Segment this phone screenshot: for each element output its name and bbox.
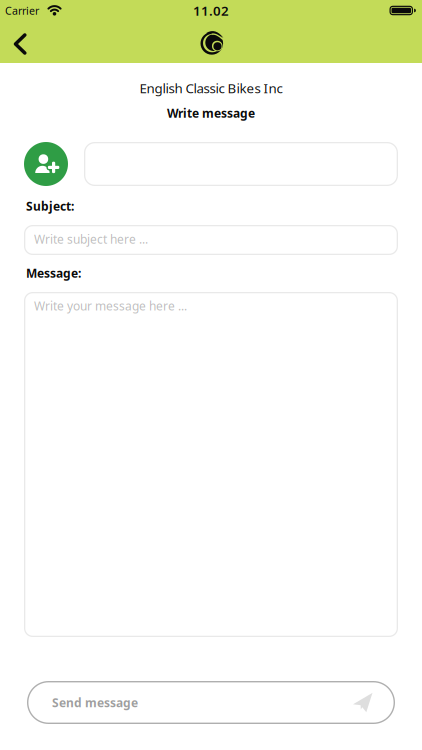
staticText: Write subject here ... (34, 231, 148, 247)
staticText: Carrier (5, 3, 39, 18)
staticText: Write your message here ... (34, 298, 187, 314)
staticText: Write message (167, 105, 255, 121)
button[interactable]: Send message (27, 681, 395, 724)
staticText: Send message (52, 694, 138, 710)
button[interactable]: Add recipient (24, 142, 68, 186)
staticText: Subject: (26, 198, 74, 214)
button[interactable]: Message field (24, 292, 398, 637)
staticText: Message: (26, 265, 81, 281)
staticText: 11.02 (193, 2, 229, 19)
button[interactable]: Recipient (84, 142, 398, 186)
button[interactable]: Subject field (24, 225, 398, 255)
staticText: English Classic Bikes Inc (139, 79, 282, 97)
button[interactable]: Back (4, 24, 36, 64)
